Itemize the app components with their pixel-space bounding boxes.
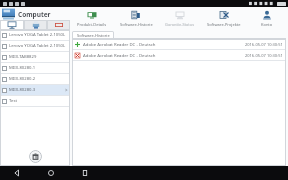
staticText: 2016-05-07 10:30:51 [245, 53, 283, 58]
button[interactable]: Adobe Acrobat Reader DC - Deutsch [72, 39, 286, 49]
button[interactable]: Konto [246, 8, 288, 30]
button[interactable]: Garantie-Status [158, 8, 202, 30]
staticText: MIIX-80280-1 [9, 65, 68, 71]
button[interactable]: Home [34, 166, 68, 180]
staticText: Lenovo YOGA Tablet 2-1050L [9, 32, 68, 38]
staticText: Computer [18, 10, 51, 19]
staticText: Test [9, 98, 68, 104]
staticText: MIIX-80280-2 [9, 76, 68, 82]
staticText: Lenovo YOGA Tablet 2-1050L [9, 43, 68, 49]
staticText: > [65, 87, 68, 93]
button[interactable]: MIIX-80280-3 [0, 85, 70, 95]
button[interactable]: Device tab [24, 20, 47, 30]
staticText: Garantie-Status [165, 22, 195, 27]
button[interactable]: Software-Historie [72, 31, 114, 39]
button[interactable]: Lenovo YOGA Tablet 2-1050L [0, 30, 70, 40]
staticText: Adobe Acrobat Reader DC - Deutsch [83, 52, 245, 58]
button[interactable]: Computer tab [0, 20, 24, 30]
button[interactable]: Recents [68, 166, 102, 180]
button[interactable]: Back [0, 166, 34, 180]
button[interactable]: Delete [29, 150, 42, 163]
staticText: Software-Projekte [207, 22, 241, 27]
button[interactable]: MIIX-80280-1 [0, 63, 70, 73]
staticText: Software-Historie [77, 33, 110, 38]
button[interactable]: Test [0, 96, 70, 106]
button[interactable]: Software-Projekte [202, 8, 246, 30]
staticText: Adobe Acrobat Reader DC - Deutsch [83, 41, 245, 47]
staticText: Konto [261, 22, 273, 27]
staticText: MIIX-TAB8829 [9, 54, 68, 60]
button[interactable]: MIIX-TAB8829 [0, 52, 70, 62]
staticText: MIIX-80280-3 [9, 87, 65, 93]
button[interactable]: Device tab [47, 20, 70, 30]
button[interactable]: Adobe Acrobat Reader DC - Deutsch [72, 50, 286, 60]
button[interactable]: Produkt-Details [70, 8, 114, 30]
button[interactable]: Lenovo YOGA Tablet 2-1050L [0, 41, 70, 51]
button[interactable]: Software-Historie [114, 8, 158, 30]
button[interactable]: MIIX-80280-2 [0, 74, 70, 84]
staticText: Software-Historie [120, 22, 153, 27]
staticText: 2016-05-07 10:30:51 [245, 42, 283, 47]
staticText: Produkt-Details [77, 22, 107, 27]
